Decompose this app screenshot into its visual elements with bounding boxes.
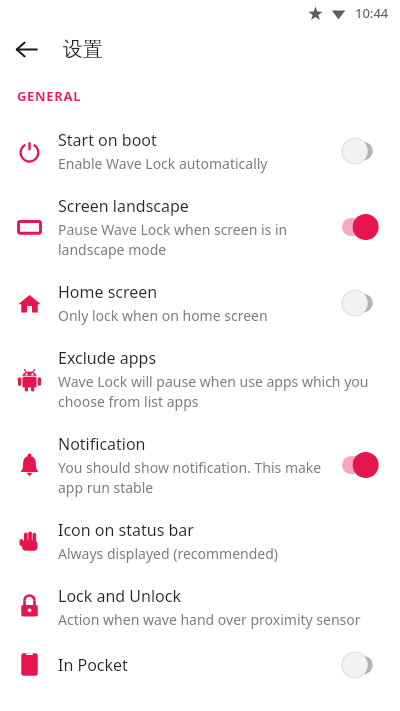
staticText: Only lock when on home screen xyxy=(58,306,268,325)
staticText: You should show notification. This make … xyxy=(58,458,332,497)
staticText: Icon on status bar xyxy=(58,519,194,541)
button[interactable]: Lock and Unlock xyxy=(0,574,400,640)
staticText: Notification xyxy=(58,433,146,455)
staticText: In Pocket xyxy=(58,654,128,676)
button[interactable]: Start on boot xyxy=(0,118,400,184)
button[interactable]: Enabled xyxy=(342,214,386,240)
staticText: Screen landscape xyxy=(58,195,189,217)
staticText: 设置 xyxy=(63,37,103,62)
staticText: Always displayed (recommended) xyxy=(58,544,279,563)
button[interactable]: Icon on status bar xyxy=(0,508,400,574)
button[interactable]: Screen landscape xyxy=(0,184,400,270)
button[interactable]: Exclude apps xyxy=(0,336,400,422)
staticText: Start on boot xyxy=(58,129,157,151)
button[interactable]: Notification xyxy=(0,422,400,508)
staticText: Pause Wave Lock when screen is in landsc… xyxy=(58,220,332,259)
staticText: Lock and Unlock xyxy=(58,585,181,607)
staticText: Enable Wave Lock automatically xyxy=(58,154,268,173)
button[interactable]: Disabled xyxy=(342,652,386,678)
button[interactable]: In Pocket xyxy=(0,640,400,689)
button[interactable]: Home screen xyxy=(0,270,400,336)
staticText: Wave Lock will pause when use apps which… xyxy=(58,372,386,411)
button[interactable]: Disabled xyxy=(342,138,386,164)
button[interactable]: Enabled xyxy=(342,452,386,478)
staticText: Exclude apps xyxy=(58,347,157,369)
button[interactable]: Disabled xyxy=(342,290,386,316)
staticText: Home screen xyxy=(58,281,158,303)
staticText: GENERAL xyxy=(17,87,82,105)
button[interactable]: Back xyxy=(5,28,47,70)
staticText: 10:44 xyxy=(355,4,389,22)
staticText: Action when wave hand over proximity sen… xyxy=(58,610,361,629)
